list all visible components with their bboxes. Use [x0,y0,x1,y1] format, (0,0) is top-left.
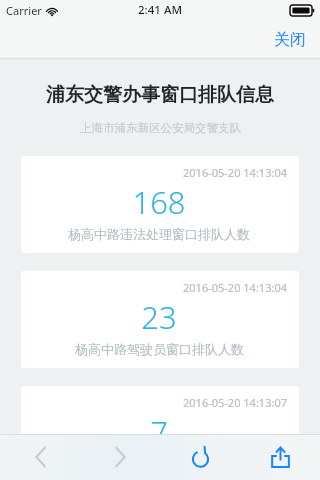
button[interactable]: 关闭 [260,22,320,58]
staticText: 杨高中路违法处理窗口排队人数 [68,226,250,242]
staticText: 2:41 AM [138,2,182,18]
staticText: 168 [132,181,186,223]
button[interactable]: Share [240,434,320,480]
button[interactable]: 2016-05-20 14:13:07 [21,386,299,480]
staticText: 杨高中路驾驶员窗口排队人数 [75,341,244,357]
staticText: 2016-05-20 14:13:07 [183,395,287,410]
button[interactable]: 2016-05-20 14:13:04 [21,271,299,368]
staticText: 关闭 [274,30,306,50]
staticText: 上海市浦东新区公安局交警支队 [80,121,241,135]
staticText: 2016-05-20 14:13:04 [183,165,287,180]
staticText: 7 [150,411,168,453]
staticText: 2016-05-20 14:13:04 [183,280,287,295]
staticText: 浦东交警办事窗口排队信息 [46,83,274,107]
staticText: 23 [141,296,177,338]
staticText: Carrier [6,3,42,18]
button[interactable]: Back [0,434,80,480]
button[interactable]: Forward [80,434,160,480]
staticText: 杨高中路车管窗口排队人数 [81,456,237,469]
button[interactable]: 2016-05-20 14:13:04 [21,156,299,253]
button[interactable]: Reload [160,434,240,480]
